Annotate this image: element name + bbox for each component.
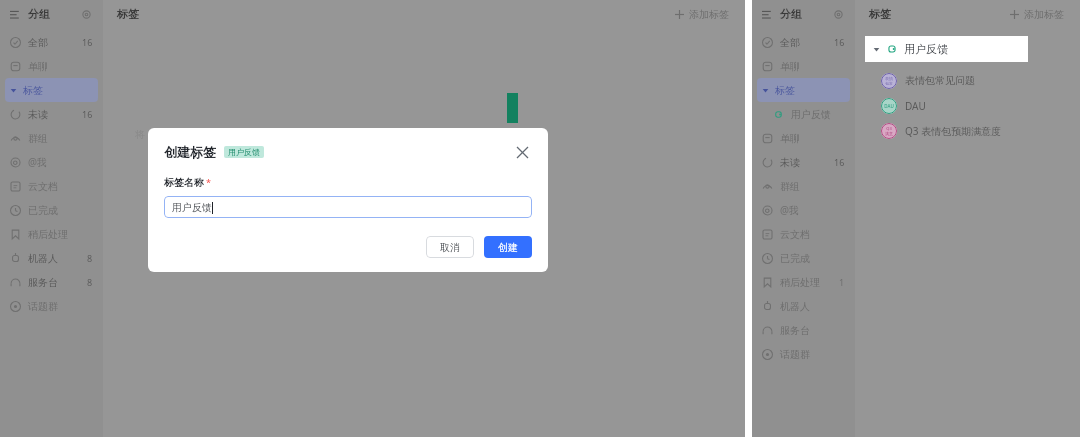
staticText: 16 — [834, 156, 845, 168]
button[interactable]: 表情 — [855, 68, 1080, 93]
button[interactable]: 未读 — [757, 150, 850, 174]
staticText: 取消 — [440, 241, 460, 254]
staticText: @我 — [28, 155, 47, 169]
staticText: 分组 — [28, 7, 50, 21]
staticText: 表情包常见问题 — [905, 74, 975, 87]
button[interactable]: Settings — [831, 7, 845, 21]
button[interactable]: 未读 — [5, 102, 98, 126]
button[interactable]: 单聊 — [757, 54, 850, 78]
staticText: Q3 表情包预期满意度 — [905, 124, 1002, 138]
button[interactable]: 取消 — [426, 236, 474, 258]
button[interactable]: 全部 — [757, 30, 850, 54]
button[interactable]: Close — [512, 142, 532, 162]
staticText: 用户反馈 — [172, 201, 212, 214]
staticText: 服务台 — [28, 276, 58, 289]
staticText: 标签 — [117, 7, 139, 21]
button[interactable]: 添加标签 — [673, 6, 731, 23]
button[interactable]: 服务台 — [757, 318, 850, 342]
staticText: DAU — [884, 103, 894, 109]
button[interactable]: Settings — [79, 7, 93, 21]
staticText: 稍后处理 — [28, 228, 68, 241]
staticText: 话题群 — [780, 348, 810, 361]
staticText: @我 — [780, 203, 799, 217]
staticText: 用户反馈 — [904, 42, 948, 56]
staticText: 机器人 — [28, 252, 58, 265]
staticText: 16 — [82, 108, 93, 120]
staticText: 已完成 — [28, 204, 58, 217]
staticText: 标签 — [23, 84, 43, 97]
button[interactable]: 已完成 — [5, 198, 98, 222]
button[interactable]: 稍后处理 — [5, 222, 98, 246]
button[interactable]: Q3 — [855, 118, 1080, 143]
staticText: 标签 — [775, 84, 795, 97]
staticText: 8 — [87, 252, 93, 264]
staticText: 话题群 — [28, 300, 58, 313]
staticText: 未读 — [780, 156, 800, 169]
button[interactable]: 标签 — [5, 78, 98, 102]
staticText: 16 — [82, 36, 93, 48]
staticText: DAU — [905, 99, 926, 113]
staticText: 添加标签 — [1024, 8, 1064, 21]
staticText: 机器人 — [780, 300, 810, 313]
button[interactable]: 机器人 — [5, 246, 98, 270]
button[interactable]: 添加标签 — [1008, 6, 1066, 23]
button[interactable]: 话题群 — [757, 342, 850, 366]
staticText: 单聊 — [780, 132, 800, 145]
staticText: 服务台 — [780, 324, 810, 337]
staticText: Q3 — [886, 126, 892, 131]
button[interactable]: @我 — [5, 150, 98, 174]
staticText: 16 — [834, 36, 845, 48]
button[interactable]: 用户反馈 — [865, 36, 1028, 62]
button[interactable]: @我 — [757, 198, 850, 222]
button[interactable]: 群组 — [5, 126, 98, 150]
button[interactable]: 单聊 — [5, 54, 98, 78]
button[interactable]: 云文档 — [757, 222, 850, 246]
staticText: 添加标签 — [689, 8, 729, 21]
button[interactable]: 机器人 — [757, 294, 850, 318]
button[interactable]: 单聊 — [757, 126, 850, 150]
staticText: 创建 — [498, 241, 518, 254]
staticText: 8 — [87, 276, 93, 288]
staticText: 1 — [839, 276, 845, 288]
staticText: 标签名称 — [164, 176, 204, 189]
button[interactable]: 服务台 — [5, 270, 98, 294]
staticText: 单聊 — [28, 60, 48, 73]
button[interactable]: 已完成 — [757, 246, 850, 270]
staticText: 表情 — [885, 76, 893, 81]
button[interactable]: 群组 — [757, 174, 850, 198]
staticText: 云文档 — [780, 228, 810, 241]
button[interactable]: 用户反馈 — [757, 102, 850, 126]
staticText: 已完成 — [780, 252, 810, 265]
button[interactable]: 云文档 — [5, 174, 98, 198]
button[interactable]: 全部 — [5, 30, 98, 54]
button[interactable]: 创建 — [484, 236, 532, 258]
button[interactable]: 标签 — [757, 78, 850, 102]
staticText: 稍后处理 — [780, 276, 820, 289]
staticText: 群组 — [780, 180, 800, 193]
staticText: 单聊 — [780, 60, 800, 73]
staticText: 全部 — [28, 36, 48, 49]
button[interactable]: 用户反馈 — [164, 196, 532, 218]
staticText: * — [206, 176, 211, 188]
button[interactable]: DAU — [855, 93, 1080, 118]
staticText: 用户反馈 — [228, 147, 260, 157]
staticText: 创建标签 — [164, 144, 216, 160]
staticText: 群组 — [28, 132, 48, 145]
staticText: 标签 — [869, 7, 891, 21]
button[interactable]: 话题群 — [5, 294, 98, 318]
staticText: 分组 — [780, 7, 802, 21]
staticText: 全部 — [780, 36, 800, 49]
staticText: 用户反馈 — [791, 108, 831, 121]
button[interactable]: 稍后处理 — [757, 270, 850, 294]
staticText: 未读 — [28, 108, 48, 121]
staticText: 将 — [135, 128, 145, 141]
staticText: 包常 — [885, 81, 893, 86]
staticText: 云文档 — [28, 180, 58, 193]
staticText: 满意 — [885, 131, 893, 136]
